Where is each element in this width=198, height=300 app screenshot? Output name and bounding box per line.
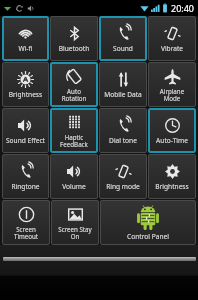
button[interactable]: Sound Effect <box>2 108 49 153</box>
button[interactable]: Airplane Mode <box>148 62 196 107</box>
staticText: Sound <box>100 44 146 53</box>
button[interactable]: Ring mode <box>99 154 147 199</box>
button[interactable]: Brightness <box>148 154 196 199</box>
staticText: Auto-Time <box>149 136 195 145</box>
staticText: Screen Timeout <box>3 225 49 240</box>
button[interactable]: Sound <box>99 16 147 61</box>
button[interactable]: Control Panel <box>100 200 196 245</box>
button[interactable]: Auto Rotation <box>50 62 98 107</box>
staticText: Auto Rotation <box>51 87 97 102</box>
staticText: Mobile Data <box>100 90 146 99</box>
staticText: Haptic FeedBack <box>51 133 97 148</box>
button[interactable]: Mobile Data <box>99 62 147 107</box>
button[interactable]: Close quick settings <box>3 257 196 261</box>
staticText: Screen Stay On <box>52 225 98 240</box>
staticText: Wi-fi <box>3 44 48 53</box>
staticText: Ringtone <box>3 182 48 191</box>
button[interactable]: Volume <box>50 154 98 199</box>
staticText: 20:40 <box>171 2 195 14</box>
staticText: Sound Effect <box>3 136 48 145</box>
button[interactable]: Auto-Time <box>148 108 196 153</box>
button[interactable]: Screen Timeout <box>2 200 50 245</box>
staticText: Vibrate <box>149 44 195 53</box>
button[interactable]: Brightness <box>2 62 49 107</box>
button[interactable]: Wi-fi <box>2 16 49 61</box>
staticText: Ring mode <box>100 182 146 191</box>
staticText: Brightness <box>3 90 48 99</box>
staticText: Bluetooth <box>51 44 97 53</box>
staticText: Volume <box>51 182 97 191</box>
staticText: Brightness <box>149 182 195 191</box>
button[interactable]: Vibrate <box>148 16 196 61</box>
button[interactable]: Ringtone <box>2 154 49 199</box>
button[interactable]: Screen Stay On <box>51 200 99 245</box>
staticText: Dial tone <box>100 136 146 145</box>
staticText: Control Panel <box>127 232 169 241</box>
button[interactable]: Bluetooth <box>50 16 98 61</box>
button[interactable]: Dial tone <box>99 108 147 153</box>
button[interactable]: Haptic FeedBack <box>50 108 98 153</box>
staticText: Airplane Mode <box>149 87 195 102</box>
